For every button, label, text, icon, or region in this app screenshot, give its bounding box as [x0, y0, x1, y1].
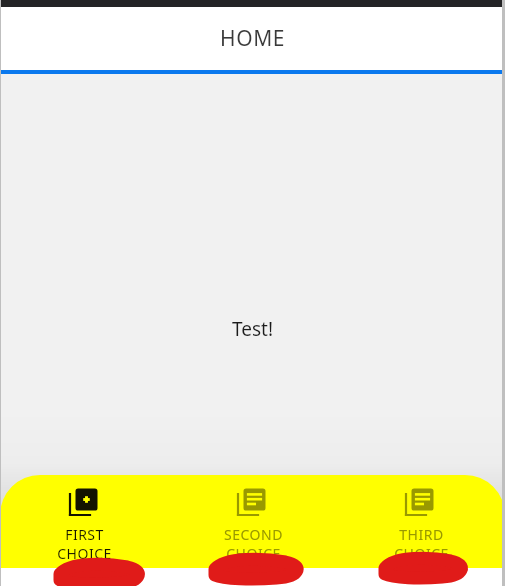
staticText: FIRST CHOICE: [57, 525, 112, 563]
staticText: Test!: [232, 316, 274, 342]
other: THIRD CHOICE: [404, 485, 438, 519]
button[interactable]: FIRST CHOICE: [0, 475, 169, 568]
other: SECOND CHOICE: [236, 485, 270, 519]
staticText: HOME: [220, 24, 286, 53]
button[interactable]: THIRD CHOICE: [337, 475, 505, 568]
other: FIRST CHOICE: [68, 485, 102, 519]
staticText: THIRD CHOICE: [394, 525, 449, 563]
staticText: SECOND CHOICE: [224, 525, 283, 563]
button[interactable]: SECOND CHOICE: [169, 475, 337, 568]
